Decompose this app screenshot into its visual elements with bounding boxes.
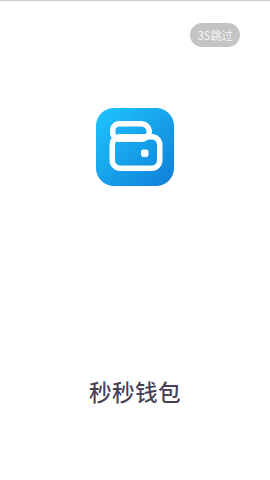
staticText: 秒秒钱包 [89, 375, 181, 407]
button[interactable]: 3S跳过 [190, 23, 240, 47]
staticText: 3S跳过 [197, 27, 232, 43]
